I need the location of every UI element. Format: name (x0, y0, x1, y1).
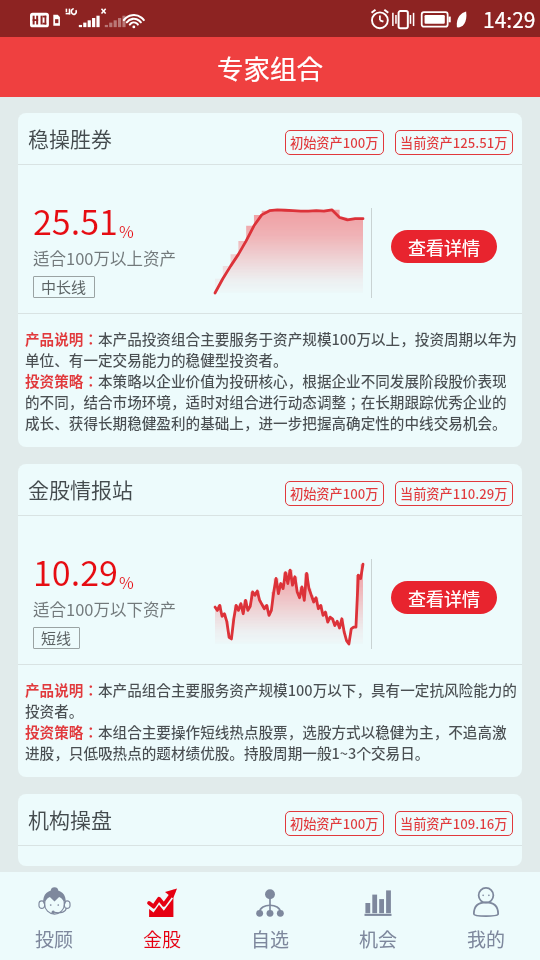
staticText: 初始资产100万 (290, 133, 379, 152)
staticText: 专家组合 (217, 48, 323, 86)
staticText: 投顾 (35, 925, 74, 953)
button[interactable]: 金股 (108, 872, 216, 960)
staticText: 产品说明：本产品投资组合主要服务于资产规模100万以上，投资周期以年为单位、有一… (25, 328, 518, 370)
button[interactable]: 查看详情 (391, 581, 497, 614)
staticText: 中长线 (41, 276, 87, 298)
staticText: 当前资产125.51万 (400, 133, 508, 152)
other: 机会 (363, 888, 393, 918)
button[interactable]: 投顾 (0, 872, 108, 960)
staticText: 初始资产100万 (290, 814, 379, 833)
button[interactable]: 机会 (324, 872, 432, 960)
staticText: 10.29 (33, 547, 118, 596)
other: 我的 (470, 887, 502, 919)
staticText: % (119, 219, 134, 242)
staticText: 初始资产100万 (290, 484, 379, 503)
other: 自选 (255, 888, 285, 918)
button[interactable]: 查看详情 (391, 230, 497, 263)
staticText: 适合100万以上资产 (33, 246, 176, 270)
other: 金股 (147, 888, 177, 918)
button[interactable]: 我的 (432, 872, 540, 960)
button[interactable]: 稳操胜券 (18, 113, 522, 447)
button[interactable]: 机构操盘 (18, 794, 522, 866)
staticText: 短线 (41, 627, 72, 649)
staticText: 适合100万以下资产 (33, 597, 176, 621)
staticText: 稳操胜券 (28, 123, 112, 153)
staticText: 当前资产109.16万 (400, 814, 508, 833)
staticText: 自选 (251, 925, 290, 953)
staticText: 我的 (467, 925, 506, 953)
staticText: 产品说明：本产品组合主要服务资产规模100万以下，具有一定抗风险能力的投资者。 (25, 679, 518, 721)
other: 投顾 (38, 887, 71, 920)
button[interactable]: 金股情报站 (18, 464, 522, 777)
staticText: 查看详情 (408, 585, 480, 611)
staticText: 当前资产110.29万 (400, 484, 508, 503)
staticText: 25.51 (33, 196, 118, 245)
staticText: 金股 (143, 925, 182, 953)
staticText: 机会 (359, 925, 398, 953)
staticText: 查看详情 (408, 234, 480, 260)
staticText: 投资策略：本策略以企业价值为投研核心，根据企业不同发展阶段股价表现的不同，结合市… (25, 370, 518, 433)
staticText: 投资策略：本组合主要操作短线热点股票，选股方式以稳健为主，不追高激进股，只低吸热… (25, 721, 518, 763)
staticText: % (119, 570, 134, 593)
staticText: 14:29 (483, 4, 536, 34)
button[interactable]: 自选 (216, 872, 324, 960)
staticText: 金股情报站 (28, 474, 133, 504)
staticText: 机构操盘 (28, 804, 112, 834)
